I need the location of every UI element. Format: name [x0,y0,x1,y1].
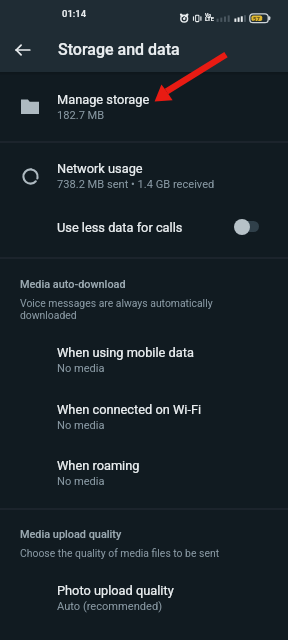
staticText: LTE [205,16,214,22]
staticText: Manage storage [57,92,150,107]
staticText: 57 [253,15,260,22]
staticText: Media upload quality [20,528,122,541]
staticText: No media [57,419,105,432]
button[interactable] [0,571,288,617]
button[interactable] [0,211,288,247]
staticText: When roaming [57,458,140,473]
staticText: Vo [205,12,211,18]
button[interactable] [0,390,288,436]
staticText: 738.2 MB sent • 1.4 GB received [57,178,215,191]
staticText: Auto (recommended) [57,600,163,613]
staticText: When connected on Wi-Fi [57,402,202,417]
button[interactable]: Back [8,35,38,65]
staticText: Choose the quality of media files to be … [20,547,242,559]
button[interactable] [0,446,288,492]
staticText: Voice messages are always automatically … [20,297,242,322]
button[interactable] [0,80,288,126]
staticText: No media [57,475,105,488]
staticText: Use less data for calls [57,220,183,235]
button[interactable] [0,149,288,195]
staticText: Storage and data [58,40,180,59]
staticText: 01:14 [62,8,87,19]
button[interactable] [0,333,288,379]
staticText: Network usage [57,161,143,176]
staticText: 182.7 MB [57,109,105,122]
staticText: Media auto-download [20,278,126,291]
staticText: When using mobile data [57,345,194,360]
staticText: Photo upload quality [57,583,174,598]
staticText: No media [57,362,105,375]
